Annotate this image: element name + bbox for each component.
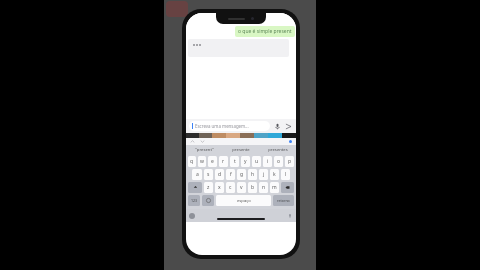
button[interactable]: k (270, 169, 279, 180)
staticText: w (200, 158, 204, 165)
button[interactable]: Info (289, 140, 292, 143)
staticText: g (240, 171, 244, 178)
button[interactable]: retorno (273, 195, 294, 206)
button[interactable]: o que é simple present (235, 26, 295, 37)
staticText: r (222, 158, 225, 165)
staticText: t (234, 158, 236, 165)
button[interactable]: f (226, 169, 235, 180)
staticText: i (267, 158, 269, 165)
button[interactable]: b (248, 182, 257, 193)
button[interactable] (188, 39, 289, 57)
staticText: d (218, 171, 222, 178)
button[interactable]: x (215, 182, 224, 193)
staticText: 123 (191, 198, 198, 203)
button[interactable]: l (281, 169, 290, 180)
staticText: presente (232, 147, 250, 153)
button[interactable]: Backspace (281, 182, 294, 193)
staticText: u (255, 158, 259, 165)
button[interactable]: Previous (190, 139, 195, 144)
button[interactable]: a (192, 169, 202, 180)
button[interactable]: t (230, 156, 239, 167)
button[interactable]: espaço (216, 195, 271, 206)
staticText: retorno (277, 198, 290, 203)
staticText: Escreva uma mensagem... (195, 123, 249, 129)
staticText: e (211, 158, 214, 165)
button[interactable]: u (252, 156, 261, 167)
button[interactable]: y (241, 156, 250, 167)
button[interactable]: h (248, 169, 257, 180)
staticText: n (262, 184, 266, 191)
button[interactable]: o (274, 156, 283, 167)
staticText: j (263, 171, 265, 178)
staticText: "present" (195, 147, 214, 153)
button[interactable]: presentes (259, 145, 296, 154)
staticText: a (196, 171, 199, 178)
button[interactable]: Send (284, 122, 293, 131)
staticText: o que é simple present (238, 28, 292, 35)
button[interactable]: Microphone (273, 122, 282, 131)
staticText: presentes (268, 147, 288, 153)
button[interactable]: Dictation (287, 213, 293, 219)
staticText: v (240, 184, 243, 191)
staticText: espaço (237, 198, 251, 204)
button[interactable]: Next (200, 139, 205, 144)
staticText: x (218, 184, 221, 191)
button[interactable]: "present" (186, 145, 222, 154)
button[interactable]: r (219, 156, 228, 167)
button[interactable]: Shift (188, 182, 202, 193)
button[interactable]: w (198, 156, 206, 167)
staticText: m (272, 184, 277, 191)
staticText: b (251, 184, 255, 191)
staticText: z (207, 184, 210, 191)
button[interactable]: q (188, 156, 196, 167)
staticText: s (207, 171, 210, 178)
button[interactable]: s (204, 169, 213, 180)
button[interactable]: m (270, 182, 279, 193)
staticText: f (230, 171, 232, 178)
button[interactable]: g (237, 169, 246, 180)
button[interactable]: presente (222, 145, 259, 154)
button[interactable]: p (285, 156, 294, 167)
staticText: o (277, 158, 281, 165)
staticText: h (251, 171, 255, 178)
staticText: c (229, 184, 232, 191)
button[interactable]: i (263, 156, 272, 167)
button[interactable]: v (237, 182, 246, 193)
staticText: k (273, 171, 276, 178)
button[interactable]: n (259, 182, 268, 193)
button[interactable]: Globe (189, 213, 195, 219)
button[interactable]: z (204, 182, 213, 193)
staticText: l (285, 171, 287, 178)
button[interactable]: c (226, 182, 235, 193)
button[interactable]: e (208, 156, 217, 167)
button[interactable]: Escreva uma mensagem... (189, 121, 270, 131)
staticText: p (288, 158, 292, 165)
staticText: y (244, 158, 247, 165)
button[interactable]: Emoji (202, 195, 214, 206)
staticText: q (190, 158, 194, 165)
button[interactable]: d (215, 169, 224, 180)
button[interactable]: j (259, 169, 268, 180)
button[interactable]: 123 (188, 195, 200, 206)
